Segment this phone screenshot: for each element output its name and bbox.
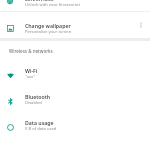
staticText: Data usage: [25, 119, 54, 126]
staticText: Wireless & networks: [9, 48, 53, 54]
staticText: 0 B of data used: [25, 126, 57, 132]
staticText: Unlock with your fingerprint: [25, 2, 80, 6]
button[interactable]: Data usage: [0, 112, 150, 138]
button[interactable]: Wi-Fi: [0, 60, 150, 86]
button[interactable]: Bluetooth: [0, 86, 150, 112]
button[interactable]: Screen lock: [0, 0, 150, 11]
staticText: Personalize your screen: [25, 29, 72, 35]
staticText: "xxx": [25, 74, 35, 80]
staticText: Disabled: [25, 100, 42, 106]
staticText: Bluetooth: [25, 93, 51, 100]
button[interactable]: More options: [133, 17, 149, 33]
staticText: Screen lock: [25, 0, 54, 2]
button[interactable]: Change wallpaper: [0, 15, 150, 41]
staticText: Change wallpaper: [25, 22, 71, 29]
staticText: Wi-Fi: [25, 67, 38, 74]
